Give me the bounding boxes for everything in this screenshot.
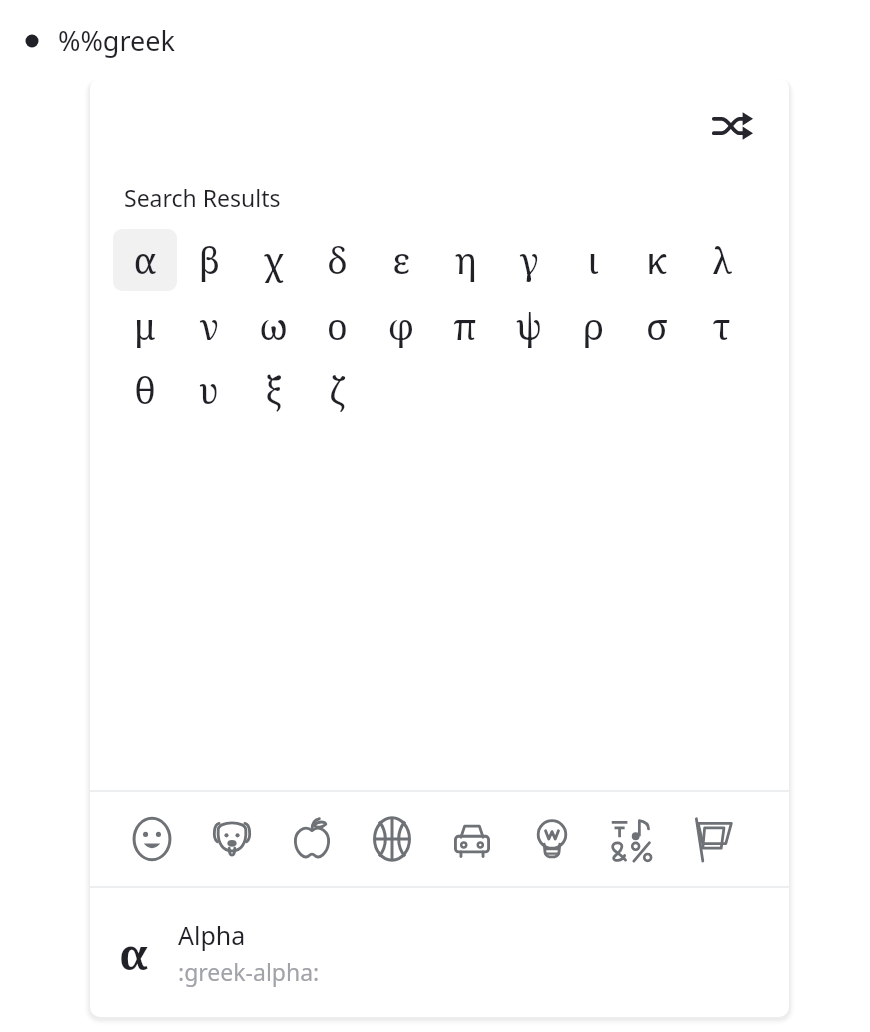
button[interactable]: Flags	[680, 808, 744, 870]
button[interactable]: Animals	[200, 808, 264, 870]
staticText: β	[199, 236, 220, 285]
staticText: ν	[200, 302, 219, 351]
button[interactable]: Symbols	[600, 808, 664, 870]
button[interactable]: Food	[280, 808, 344, 870]
button[interactable]: ω	[241, 295, 305, 357]
staticText: ξ	[265, 366, 282, 415]
button[interactable]: ο	[305, 295, 369, 357]
button[interactable]: ξ	[241, 359, 305, 421]
button[interactable]: Sports	[360, 808, 424, 870]
staticText: ι	[588, 236, 599, 285]
button[interactable]: Smileys	[120, 808, 184, 870]
button[interactable]: χ	[241, 229, 305, 291]
staticText: %%greek	[58, 22, 175, 59]
staticText: γ	[520, 236, 539, 285]
button[interactable]: ρ	[561, 295, 625, 357]
button[interactable]: θ	[113, 359, 177, 421]
button[interactable]: γ	[497, 229, 561, 291]
button[interactable]: μ	[113, 295, 177, 357]
button[interactable]: β	[177, 229, 241, 291]
button[interactable]: η	[433, 229, 497, 291]
staticText: ε	[392, 236, 410, 285]
staticText: :greek-alpha:	[178, 956, 320, 987]
staticText: ζ	[329, 366, 345, 415]
staticText: π	[453, 302, 477, 351]
button[interactable]: α	[90, 888, 789, 1017]
button[interactable]: α	[113, 229, 177, 291]
staticText: δ	[327, 236, 348, 285]
staticText: α	[133, 236, 157, 285]
staticText: ω	[259, 302, 288, 351]
button[interactable]: Objects	[520, 808, 584, 870]
button[interactable]: φ	[369, 295, 433, 357]
staticText: ρ	[583, 302, 604, 351]
button[interactable]: δ	[305, 229, 369, 291]
button[interactable]: ε	[369, 229, 433, 291]
button[interactable]: ν	[177, 295, 241, 357]
button[interactable]: σ	[625, 295, 689, 357]
staticText: ο	[327, 302, 348, 351]
button[interactable]: ι	[561, 229, 625, 291]
button[interactable]: %%greek	[14, 16, 274, 66]
staticText: η	[454, 236, 477, 285]
staticText: ψ	[516, 302, 542, 351]
staticText: θ	[134, 366, 156, 415]
staticText: μ	[134, 302, 156, 351]
button[interactable]: κ	[625, 229, 689, 291]
button[interactable]: υ	[177, 359, 241, 421]
staticText: χ	[263, 236, 284, 285]
staticText: υ	[199, 366, 219, 415]
staticText: τ	[712, 302, 731, 351]
staticText: φ	[388, 302, 414, 351]
button[interactable]: τ	[689, 295, 753, 357]
staticText: α	[119, 923, 149, 983]
staticText: λ	[711, 236, 732, 285]
staticText: Alpha	[178, 918, 246, 952]
button[interactable]: ψ	[497, 295, 561, 357]
button[interactable]: Shuffle	[702, 98, 764, 154]
staticText: Search Results	[124, 182, 281, 213]
button[interactable]: π	[433, 295, 497, 357]
button[interactable]: Travel	[440, 808, 504, 870]
button[interactable]: λ	[689, 229, 753, 291]
button[interactable]: ζ	[305, 359, 369, 421]
staticText: σ	[646, 302, 668, 351]
staticText: κ	[647, 236, 667, 285]
